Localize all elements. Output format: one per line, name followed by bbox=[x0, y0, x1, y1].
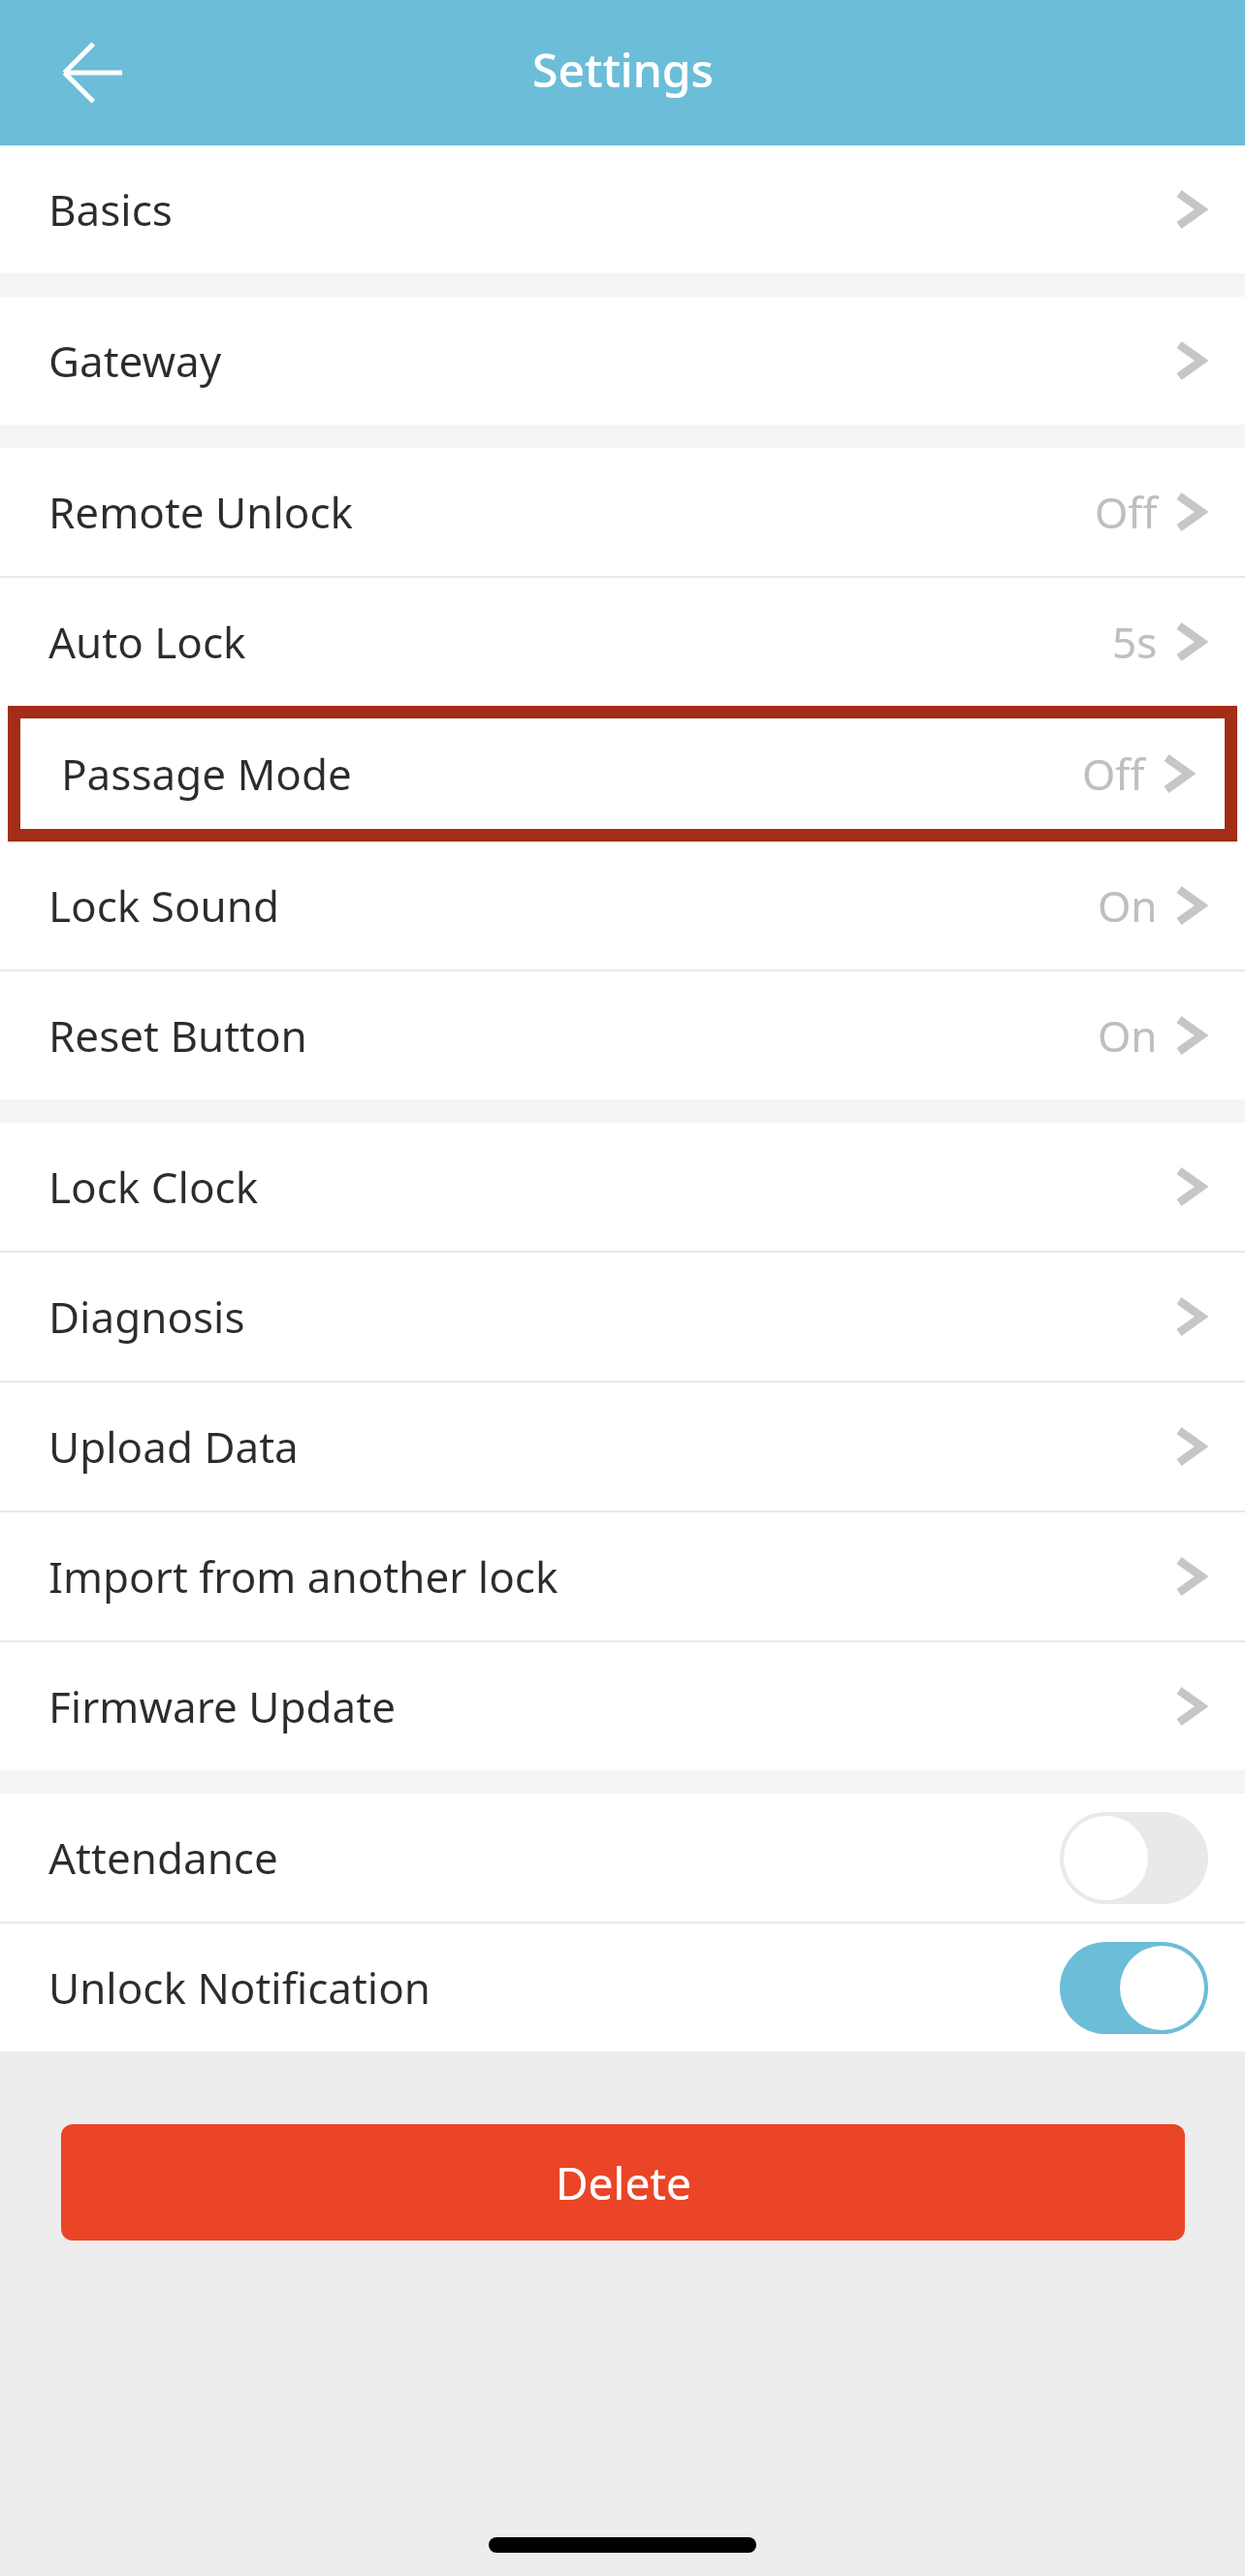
button[interactable]: Attendance bbox=[0, 1794, 1245, 1922]
staticText: Basics bbox=[48, 180, 173, 239]
button[interactable]: Delete bbox=[61, 2124, 1185, 2241]
button[interactable]: Attendance off bbox=[1060, 1812, 1208, 1904]
staticText: On bbox=[1098, 876, 1158, 935]
button[interactable]: Lock Clock bbox=[0, 1123, 1245, 1251]
staticText: Import from another lock bbox=[48, 1547, 559, 1606]
staticText: Lock Clock bbox=[48, 1158, 259, 1216]
staticText: On bbox=[1098, 1006, 1158, 1065]
staticText: Firmware Update bbox=[48, 1677, 396, 1735]
staticText: Unlock Notification bbox=[48, 1958, 431, 2017]
button[interactable]: Diagnosis bbox=[0, 1253, 1245, 1381]
button[interactable]: Upload Data bbox=[0, 1383, 1245, 1511]
staticText: Diagnosis bbox=[48, 1288, 245, 1346]
button[interactable]: Import from another lock bbox=[0, 1512, 1245, 1640]
button[interactable]: Lock Sound bbox=[0, 842, 1245, 970]
staticText: 5s bbox=[1112, 613, 1158, 671]
staticText: Off bbox=[1095, 483, 1158, 541]
button[interactable]: Remote Unlock bbox=[0, 448, 1245, 576]
staticText: Off bbox=[1082, 745, 1145, 803]
staticText: Passage Mode bbox=[61, 745, 352, 803]
button[interactable]: Firmware Update bbox=[0, 1642, 1245, 1770]
staticText: Gateway bbox=[48, 332, 222, 390]
staticText: Settings bbox=[532, 38, 714, 101]
staticText: Upload Data bbox=[48, 1417, 299, 1476]
button[interactable]: Unlock notification on bbox=[1060, 1942, 1208, 2034]
button[interactable]: Auto Lock bbox=[0, 578, 1245, 706]
button[interactable]: Passage Mode bbox=[20, 718, 1225, 829]
staticText: Reset Button bbox=[48, 1006, 307, 1065]
staticText: Lock Sound bbox=[48, 876, 279, 935]
button[interactable]: Basics bbox=[0, 145, 1245, 273]
staticText: Delete bbox=[556, 2152, 691, 2213]
button[interactable]: Gateway bbox=[0, 297, 1245, 425]
staticText: Remote Unlock bbox=[48, 483, 354, 541]
staticText: Auto Lock bbox=[48, 613, 246, 671]
staticText: Attendance bbox=[48, 1829, 278, 1887]
button[interactable]: Reset Button bbox=[0, 971, 1245, 1099]
button[interactable]: Back bbox=[39, 19, 145, 126]
button[interactable]: Unlock Notification bbox=[0, 1924, 1245, 2051]
